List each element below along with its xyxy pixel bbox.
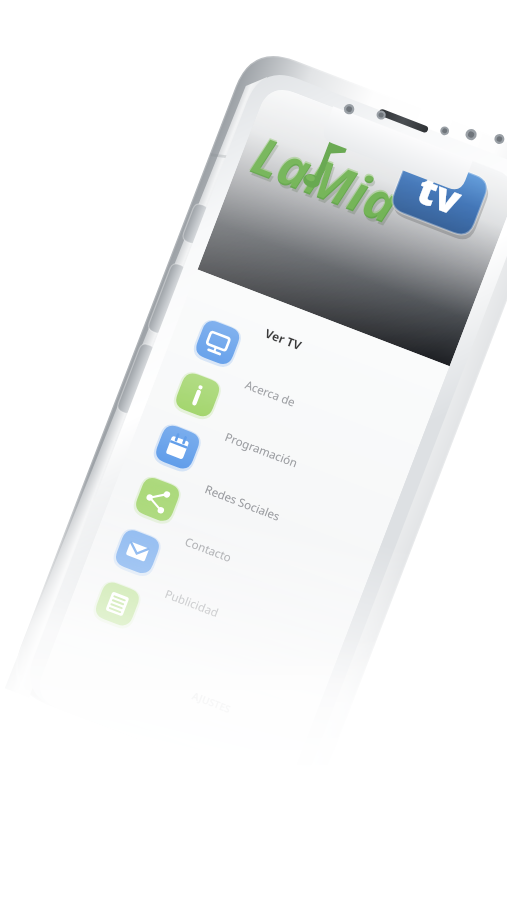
button[interactable]: LaMia TV app preview on phone	[0, 0, 507, 900]
